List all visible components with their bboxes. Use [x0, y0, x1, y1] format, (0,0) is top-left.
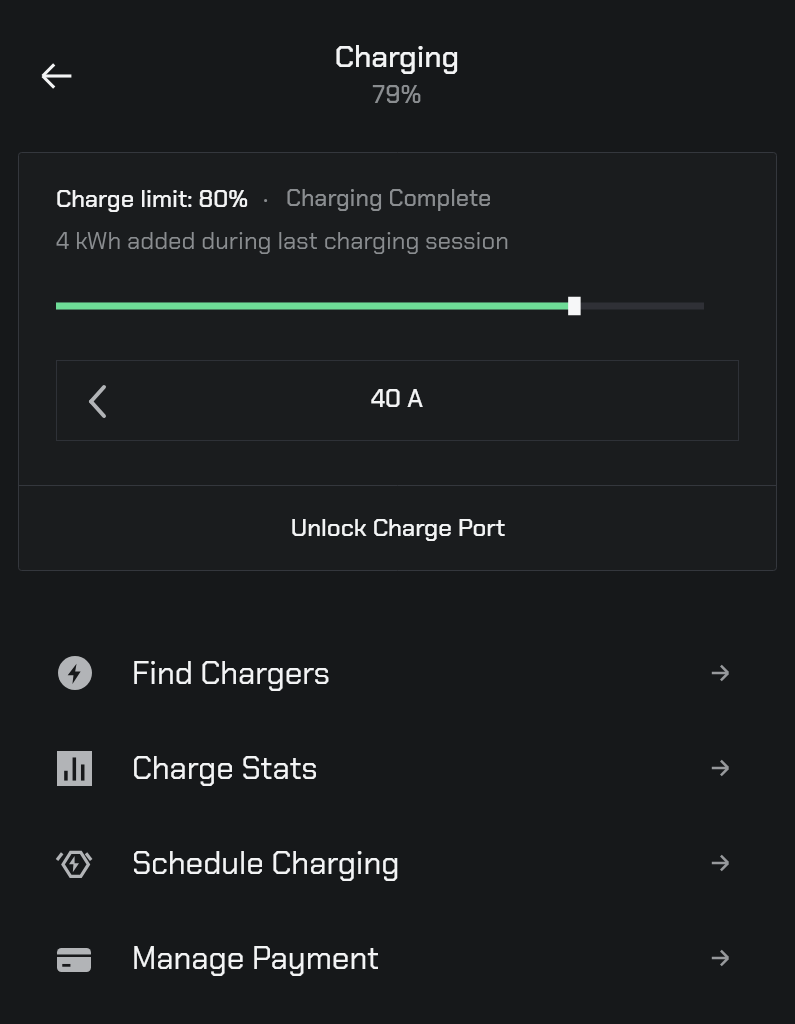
button[interactable]: Schedule Charging	[0, 815, 795, 910]
staticText: Schedule Charging	[132, 843, 400, 884]
staticText: Charging Complete	[286, 183, 492, 213]
staticText: Charging	[97, 37, 697, 76]
staticText: 79%	[97, 78, 697, 110]
staticText: Unlock Charge Port	[98, 512, 698, 543]
staticText: Charge Stats	[132, 748, 318, 789]
button[interactable]: Back	[25, 45, 89, 106]
button[interactable]: Charge limit slider	[56, 292, 704, 320]
button[interactable]: Decrease charging amps	[69, 372, 125, 430]
button[interactable]: Manage Payment	[0, 910, 795, 1005]
staticText: Find Chargers	[132, 653, 330, 694]
staticText: ·	[263, 183, 269, 214]
staticText: 4 kWh added during last charging session	[56, 225, 509, 256]
staticText: Charge limit: 80%	[56, 183, 249, 214]
button[interactable]: Decrease charging amps	[56, 360, 739, 441]
staticText: 40 A	[97, 382, 697, 414]
button[interactable]	[19, 486, 776, 570]
staticText: Manage Payment	[132, 938, 380, 979]
button[interactable]: Charge Stats	[0, 720, 795, 815]
button[interactable]: Find Chargers	[0, 625, 795, 720]
